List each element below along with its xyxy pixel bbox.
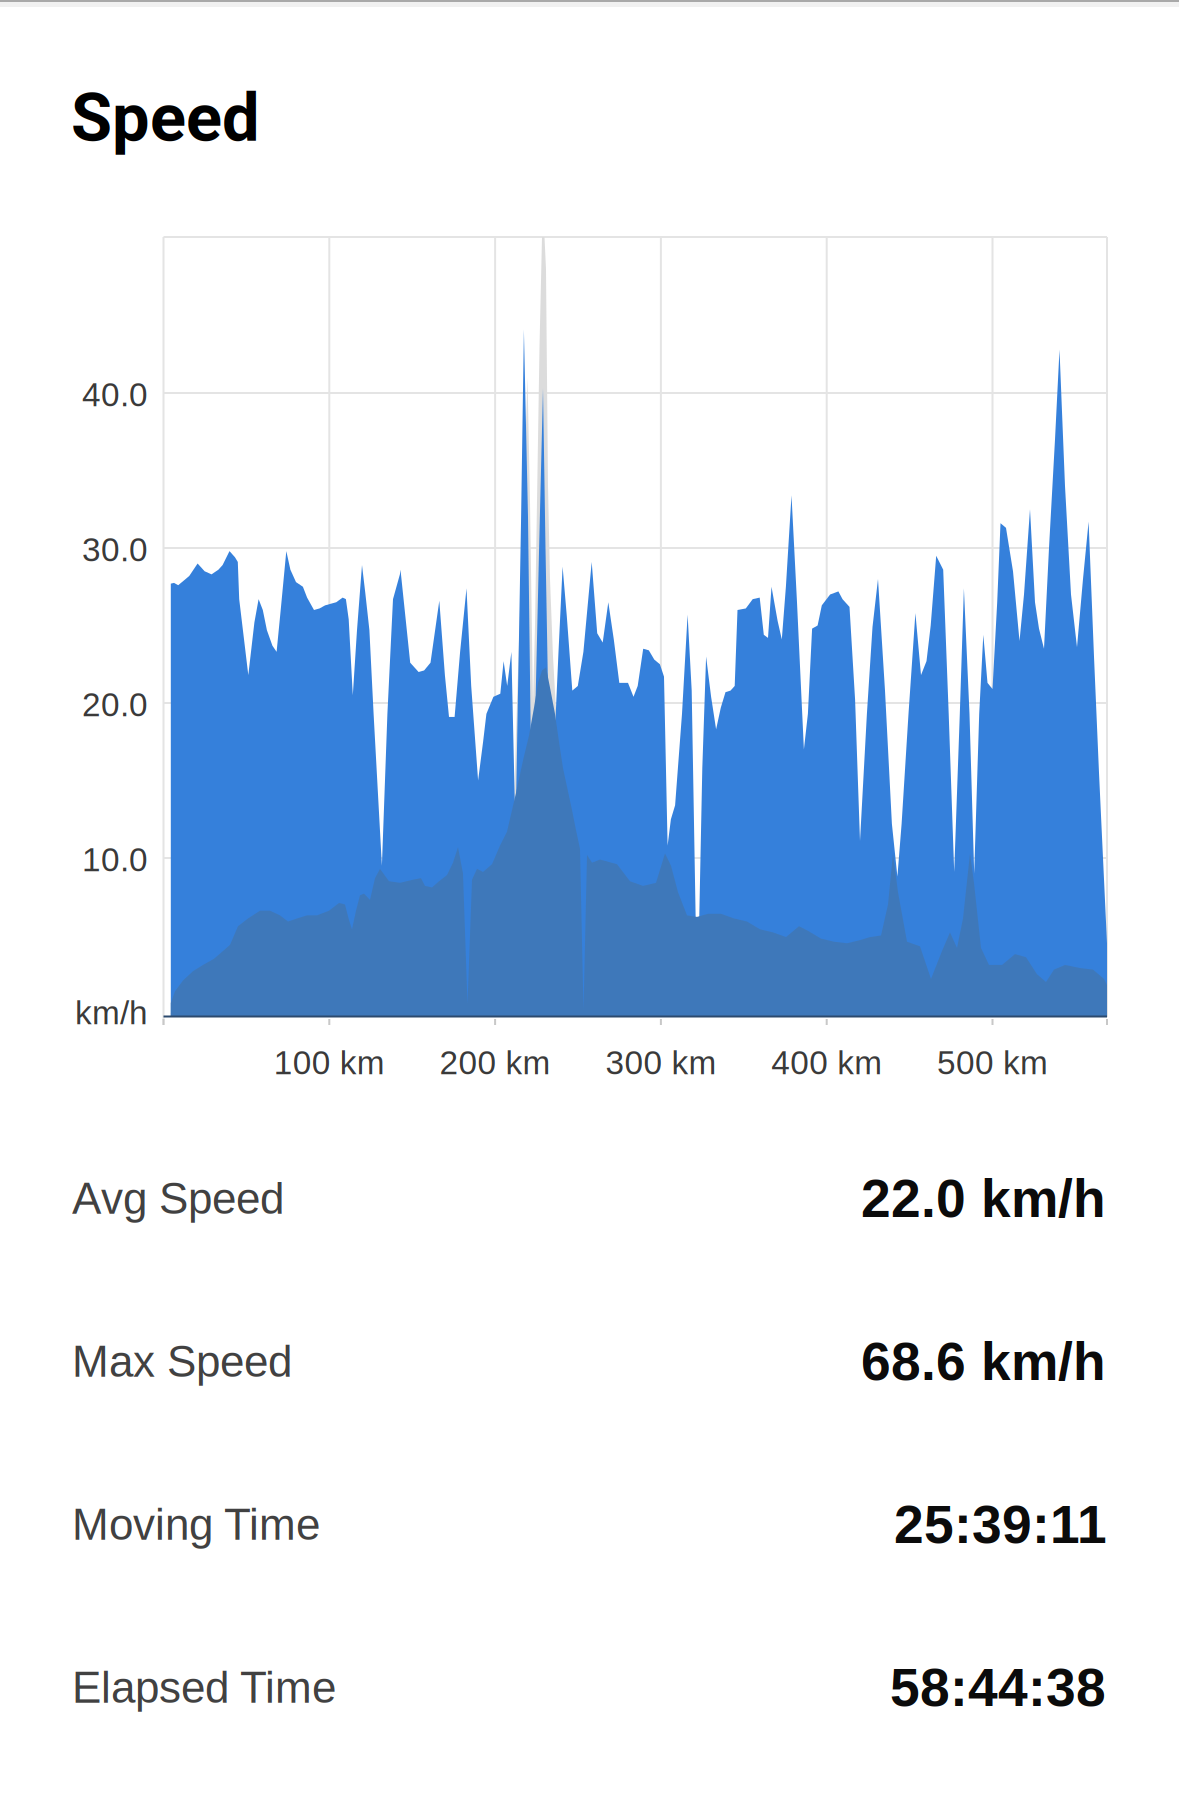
button[interactable]: Moving Time: [0, 1443, 1179, 1606]
staticText: Moving Time: [72, 1500, 320, 1549]
staticText: 200 km: [440, 1044, 551, 1081]
staticText: 400 km: [771, 1044, 882, 1081]
button[interactable]: Avg Speed: [0, 1117, 1179, 1280]
button[interactable]: Max Speed: [0, 1280, 1179, 1443]
staticText: Elapsed Time: [72, 1663, 336, 1712]
staticText: km/h: [75, 994, 148, 1031]
button[interactable]: Elapsed Time: [0, 1606, 1179, 1769]
staticText: 68.6 km/h: [861, 1332, 1106, 1391]
staticText: Avg Speed: [72, 1174, 284, 1223]
staticText: 58:44:38: [890, 1658, 1106, 1717]
staticText: 40.0: [82, 376, 148, 413]
staticText: 10.0: [82, 841, 148, 878]
staticText: Speed: [71, 79, 260, 157]
staticText: Max Speed: [72, 1337, 292, 1386]
staticText: 20.0: [82, 686, 148, 723]
staticText: 500 km: [937, 1044, 1048, 1081]
staticText: 25:39:11: [894, 1495, 1106, 1554]
staticText: 100 km: [274, 1044, 385, 1081]
staticText: 22.0 km/h: [861, 1169, 1106, 1228]
staticText: 300 km: [605, 1044, 716, 1081]
staticText: 30.0: [82, 531, 148, 568]
